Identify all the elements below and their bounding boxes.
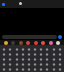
button[interactable]: Send (58, 35, 62, 39)
button[interactable] (11, 41, 15, 45)
button[interactable] (4, 41, 8, 45)
button[interactable] (33, 47, 37, 52)
button[interactable] (58, 57, 62, 62)
button[interactable]: Back (2, 3, 5, 6)
button[interactable] (45, 62, 49, 67)
button[interactable] (2, 35, 57, 39)
button[interactable] (2, 57, 6, 62)
button[interactable] (45, 52, 49, 57)
button[interactable] (19, 41, 23, 45)
button[interactable] (45, 67, 49, 72)
button[interactable] (33, 62, 37, 67)
button[interactable] (49, 41, 53, 45)
button[interactable] (21, 47, 25, 52)
button[interactable] (27, 67, 31, 72)
button[interactable] (45, 47, 49, 52)
button[interactable] (58, 52, 62, 57)
button[interactable] (8, 47, 12, 52)
button[interactable] (27, 57, 31, 62)
button[interactable] (52, 57, 56, 62)
button[interactable] (27, 62, 31, 67)
button[interactable] (39, 47, 43, 52)
button[interactable] (2, 47, 6, 52)
button[interactable] (27, 52, 31, 57)
button[interactable] (21, 67, 25, 72)
button[interactable] (27, 47, 31, 52)
button[interactable] (2, 67, 6, 72)
button[interactable] (26, 41, 30, 45)
button[interactable] (8, 57, 12, 62)
button[interactable] (8, 52, 12, 57)
button[interactable] (33, 57, 37, 62)
button[interactable] (34, 41, 38, 45)
button[interactable] (15, 47, 19, 52)
button[interactable] (15, 52, 19, 57)
button[interactable] (15, 62, 19, 67)
button[interactable] (21, 57, 25, 62)
button[interactable] (33, 52, 37, 57)
button[interactable] (39, 62, 43, 67)
button[interactable] (56, 41, 60, 45)
button[interactable] (15, 67, 19, 72)
button[interactable] (39, 57, 43, 62)
button[interactable] (45, 57, 49, 62)
button[interactable] (58, 67, 62, 72)
button[interactable] (21, 52, 25, 57)
button[interactable] (33, 67, 37, 72)
button[interactable] (2, 62, 6, 67)
button[interactable] (52, 47, 56, 52)
button[interactable] (52, 62, 56, 67)
button[interactable] (2, 52, 6, 57)
button[interactable] (8, 67, 12, 72)
button[interactable] (52, 67, 56, 72)
button[interactable] (8, 62, 12, 67)
button[interactable] (52, 52, 56, 57)
button[interactable] (39, 52, 43, 57)
button[interactable] (21, 62, 25, 67)
button[interactable] (41, 41, 45, 45)
button[interactable] (58, 47, 62, 52)
button[interactable] (39, 67, 43, 72)
button[interactable] (58, 62, 62, 67)
button[interactable] (15, 57, 19, 62)
